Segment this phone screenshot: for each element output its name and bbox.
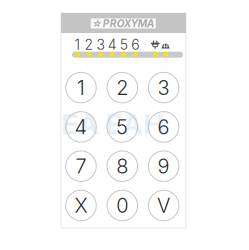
staticText: 4 bbox=[108, 36, 117, 53]
button[interactable]: 6 bbox=[148, 112, 179, 142]
staticText: SEA EAH bbox=[43, 107, 164, 141]
button[interactable]: 9 bbox=[148, 151, 179, 181]
staticText: 1 bbox=[74, 36, 80, 53]
staticText: 5 bbox=[116, 115, 128, 139]
staticText: 2 bbox=[116, 75, 128, 100]
button[interactable]: 1 bbox=[66, 72, 96, 103]
button[interactable]: 8 bbox=[107, 151, 137, 181]
staticText: X bbox=[74, 193, 87, 218]
button[interactable]: X bbox=[66, 190, 96, 221]
button[interactable]: 0 bbox=[107, 190, 137, 221]
staticText: V bbox=[157, 193, 170, 218]
staticText: 1 bbox=[77, 75, 85, 100]
button[interactable]: 2 bbox=[107, 72, 137, 103]
staticText: 2 bbox=[85, 36, 94, 53]
staticText: 0 bbox=[116, 193, 128, 218]
button[interactable]: 5 bbox=[107, 112, 137, 142]
staticText: 7 bbox=[75, 154, 86, 178]
staticText: 3 bbox=[97, 36, 105, 53]
staticText: 4 bbox=[74, 115, 87, 139]
staticText: 6 bbox=[158, 115, 170, 139]
staticText: ☆PROXYMA bbox=[92, 17, 155, 30]
staticText: 6 bbox=[131, 36, 139, 53]
staticText: 3 bbox=[158, 75, 170, 100]
button[interactable]: 4 bbox=[66, 112, 96, 142]
button[interactable]: 3 bbox=[148, 72, 179, 103]
staticText: 5 bbox=[120, 36, 128, 53]
staticText: 8 bbox=[116, 154, 128, 178]
staticText: 9 bbox=[158, 154, 170, 178]
button[interactable]: V bbox=[148, 190, 179, 221]
button[interactable]: 7 bbox=[66, 151, 96, 181]
